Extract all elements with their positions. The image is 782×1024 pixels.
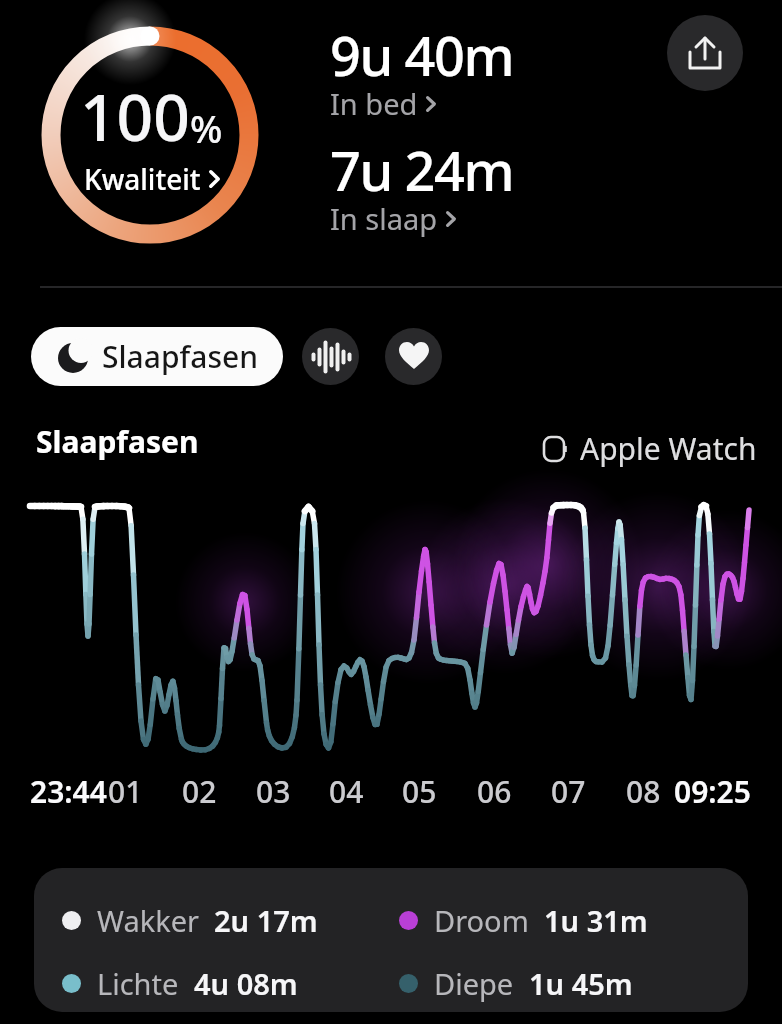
- button[interactable]: In slaap: [330, 199, 456, 238]
- staticText: In slaap: [330, 199, 438, 238]
- button[interactable]: In bed: [330, 84, 436, 123]
- button[interactable]: Slaapfasen: [31, 327, 283, 386]
- staticText: 04: [329, 771, 364, 812]
- staticText: 4u 08m: [194, 964, 298, 1003]
- staticText: In bed: [330, 84, 418, 123]
- staticText: Droom: [434, 901, 529, 940]
- button[interactable]: Lichte: [62, 964, 298, 1003]
- staticText: 06: [477, 771, 512, 812]
- staticText: %: [190, 102, 223, 154]
- staticText: Apple Watch: [580, 428, 757, 469]
- button[interactable]: [667, 15, 743, 91]
- staticText: 100: [80, 73, 190, 160]
- staticText: Slaapfasen: [36, 421, 199, 462]
- button[interactable]: 100: [33, 17, 269, 253]
- staticText: 1u 45m: [529, 964, 633, 1003]
- staticText: 01: [108, 771, 143, 812]
- staticText: 02: [182, 771, 217, 812]
- staticText: 23:44: [30, 771, 107, 812]
- staticText: 7u 24m: [330, 133, 514, 207]
- staticText: 1u 31m: [544, 901, 648, 940]
- staticText: 05: [402, 771, 437, 812]
- staticText: Diepe: [434, 964, 514, 1003]
- button[interactable]: [302, 328, 359, 385]
- staticText: Wakker: [97, 901, 199, 940]
- staticText: 07: [551, 771, 586, 812]
- staticText: Slaapfasen: [102, 336, 258, 377]
- staticText: 08: [626, 771, 661, 812]
- staticText: 03: [256, 771, 291, 812]
- staticText: Kwaliteit: [84, 160, 201, 198]
- staticText: 09:25: [674, 771, 751, 812]
- staticText: 9u 40m: [330, 18, 514, 92]
- button[interactable]: Wakker: [62, 901, 318, 940]
- button[interactable]: [385, 328, 442, 385]
- button[interactable]: Diepe: [399, 964, 633, 1003]
- staticText: Lichte: [97, 964, 179, 1003]
- button[interactable]: Droom: [399, 901, 648, 940]
- staticText: 2u 17m: [214, 901, 318, 940]
